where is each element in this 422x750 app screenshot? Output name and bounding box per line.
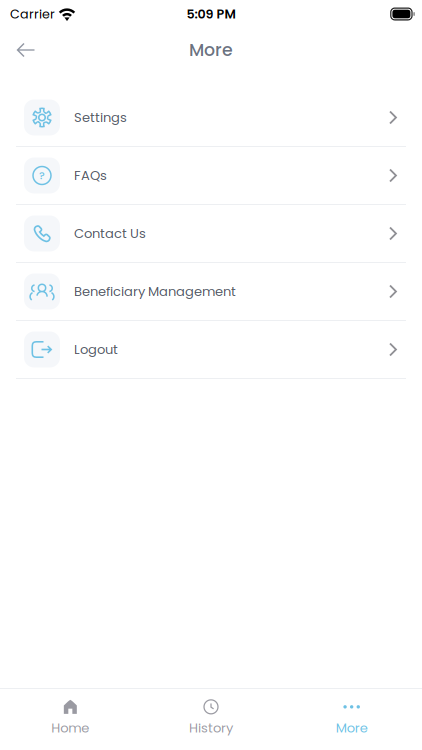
staticText: ? [39,168,45,183]
button[interactable]: Beneficiary Management [0,263,422,321]
staticText: More [189,38,233,62]
button[interactable]: Home [0,689,141,750]
staticText: Home [51,719,89,737]
button[interactable]: History [141,689,281,750]
staticText: History [189,719,233,737]
button[interactable]: Settings [0,89,422,147]
button[interactable]: Logout [0,321,422,379]
staticText: Logout [74,340,118,359]
button[interactable]: ? [0,147,422,205]
staticText: 5:09 PM [186,5,235,23]
staticText: More [336,719,368,737]
staticText: FAQs [74,166,107,185]
staticText: Carrier [10,5,55,23]
button[interactable]: Back [4,28,48,72]
button[interactable]: Contact Us [0,205,422,263]
staticText: Contact Us [74,224,146,243]
staticText: Beneficiary Management [74,282,236,301]
button[interactable]: More [281,689,422,750]
staticText: Settings [74,108,127,127]
